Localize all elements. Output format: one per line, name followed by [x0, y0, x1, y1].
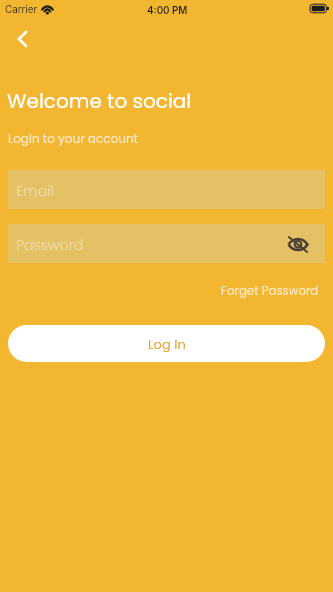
staticText: Log In: [148, 335, 186, 353]
button[interactable]: Show password: [287, 233, 309, 255]
staticText: 4:00 PM: [147, 5, 188, 17]
staticText: Welcome to social: [7, 87, 192, 115]
staticText: Login to your account: [8, 130, 138, 147]
button[interactable]: Email: [8, 170, 325, 209]
staticText: Carrier: [5, 4, 38, 16]
staticText: Email: [16, 181, 54, 201]
button[interactable]: Back: [8, 24, 37, 53]
button[interactable]: Password: [8, 224, 325, 263]
staticText: Forget Password: [221, 283, 319, 300]
staticText: Password: [16, 235, 84, 255]
button[interactable]: Log In: [8, 325, 325, 362]
button[interactable]: Forget Password: [221, 283, 319, 300]
